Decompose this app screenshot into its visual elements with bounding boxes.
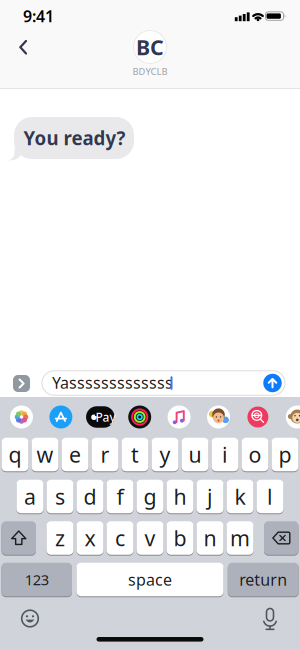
staticText: return	[239, 569, 287, 590]
staticText: r	[100, 440, 109, 469]
button[interactable]: Animoji	[286, 405, 300, 428]
button[interactable]: q	[1, 438, 28, 472]
staticText: space	[128, 569, 172, 590]
staticText: u	[188, 440, 201, 469]
staticText: f	[116, 482, 123, 511]
button[interactable]: w	[31, 438, 58, 472]
staticText: h	[173, 482, 186, 511]
button[interactable]: u	[181, 438, 208, 472]
staticText: q	[8, 440, 21, 469]
button[interactable]: Emoji	[22, 610, 38, 627]
button[interactable]: Delete	[264, 521, 298, 556]
button[interactable]: Back	[14, 38, 32, 56]
button[interactable]: h	[166, 480, 193, 514]
button[interactable]: return	[228, 563, 299, 597]
staticText: i	[222, 440, 228, 469]
staticText: BDYCLB	[132, 65, 167, 78]
button[interactable]: z	[46, 521, 73, 556]
staticText: l	[267, 482, 273, 511]
button[interactable]: l	[256, 480, 283, 514]
button[interactable]: Memoji Stickers	[207, 405, 230, 428]
button[interactable]: g	[136, 480, 163, 514]
staticText: v	[144, 524, 155, 552]
staticText: x	[84, 524, 95, 552]
button[interactable]: o	[241, 438, 268, 472]
staticText: j	[207, 482, 213, 511]
staticText: b	[173, 524, 186, 552]
staticText: g	[143, 482, 156, 511]
button[interactable]: m	[226, 521, 253, 556]
button[interactable]: a	[16, 480, 43, 514]
button[interactable]: v	[136, 521, 163, 556]
staticText: k	[234, 482, 245, 511]
staticText: y	[159, 440, 170, 469]
button[interactable]: iMessage apps	[13, 375, 30, 392]
staticText: a	[24, 482, 36, 511]
staticText: d	[83, 482, 96, 511]
button[interactable]: b	[166, 521, 193, 556]
button[interactable]: Photos	[10, 405, 33, 428]
button[interactable]: Apple Pay	[86, 406, 114, 428]
staticText: 123	[25, 570, 49, 589]
button[interactable]: r	[91, 438, 118, 472]
button[interactable]: BDYCLB contact	[133, 30, 167, 64]
button[interactable]: App Store	[49, 405, 72, 428]
staticText: t	[131, 440, 139, 469]
button[interactable]: t	[121, 438, 148, 472]
button[interactable]: d	[76, 480, 103, 514]
button[interactable]: Music	[168, 405, 191, 428]
button[interactable]: x	[76, 521, 103, 556]
staticText: 9:41	[23, 5, 54, 27]
button[interactable]: i	[211, 438, 238, 472]
button[interactable]: space	[76, 563, 223, 597]
button[interactable]: Shift	[1, 521, 36, 556]
staticText: Yasssssssssssss	[52, 372, 173, 393]
staticText: c	[115, 524, 125, 552]
button[interactable]: p	[271, 438, 298, 472]
staticText: z	[55, 524, 65, 552]
staticText: Pay	[95, 409, 115, 425]
button[interactable]: Activity	[128, 405, 151, 428]
button[interactable]: e	[61, 438, 88, 472]
button[interactable]: Dictation	[260, 607, 280, 629]
button[interactable]: y	[151, 438, 178, 472]
button[interactable]: k	[226, 480, 253, 514]
staticText: p	[278, 440, 291, 469]
staticText: m	[230, 524, 250, 552]
staticText: o	[248, 440, 261, 469]
staticText: BC	[136, 33, 164, 61]
staticText: s	[55, 482, 65, 511]
button[interactable]: f	[106, 480, 133, 514]
staticText: w	[36, 440, 53, 469]
button[interactable]: c	[106, 521, 133, 556]
staticText: You ready?	[23, 126, 125, 150]
button[interactable]: j	[196, 480, 223, 514]
button[interactable]: s	[46, 480, 73, 514]
button[interactable]: Send	[263, 374, 282, 392]
button[interactable]: 123	[1, 563, 72, 597]
button[interactable]: n	[196, 521, 223, 556]
staticText: n	[203, 524, 216, 552]
button[interactable]: Images search	[244, 406, 271, 427]
staticText: e	[69, 440, 81, 469]
